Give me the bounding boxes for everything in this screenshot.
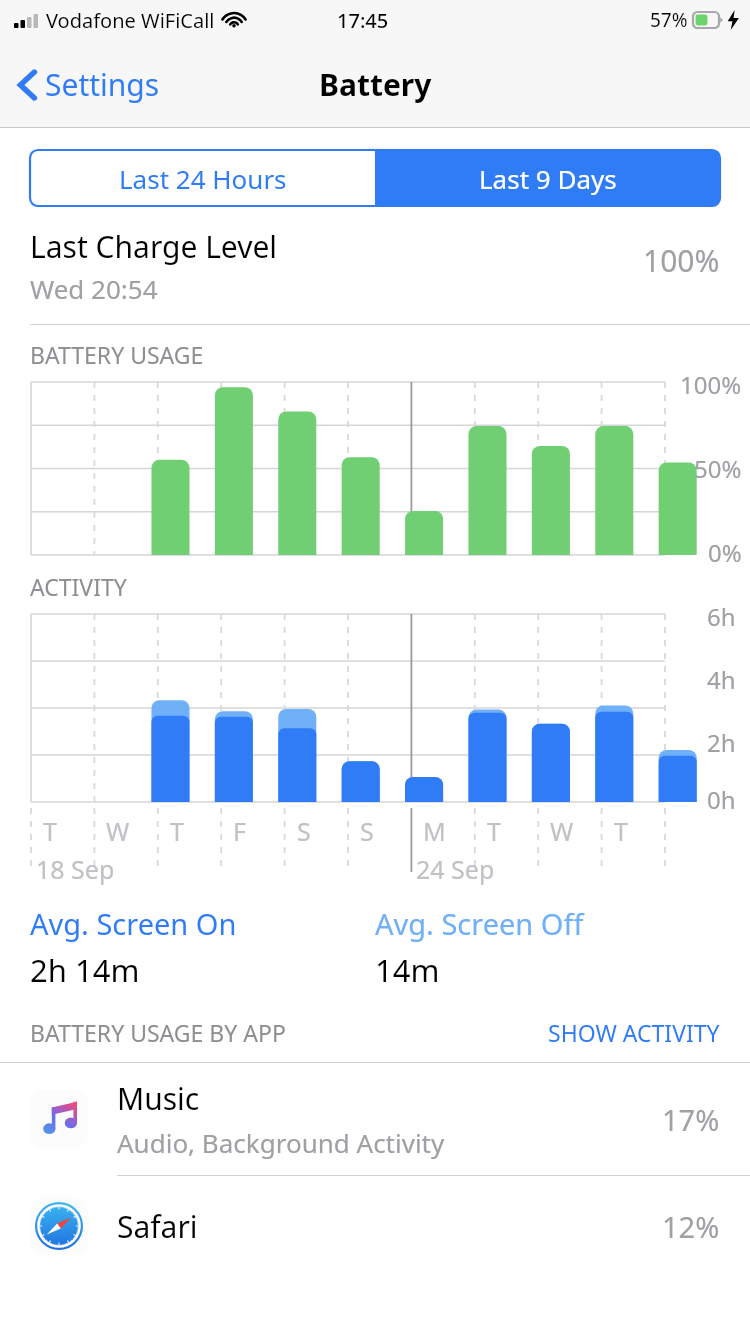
button[interactable]: Last 24 Hours: [30, 150, 375, 206]
staticText: 14m: [375, 949, 440, 991]
button[interactable]: Music: [0, 1063, 750, 1176]
staticText: Avg. Screen Off: [375, 904, 584, 943]
staticText: 2h: [707, 726, 736, 759]
staticText: T: [487, 814, 501, 848]
staticText: ACTIVITY: [30, 571, 127, 602]
staticText: S: [297, 814, 311, 848]
staticText: Safari: [117, 1206, 198, 1247]
staticText: T: [43, 814, 57, 848]
staticText: Wed 20:54: [30, 271, 158, 306]
staticText: 0%: [708, 536, 742, 569]
staticText: F: [233, 814, 246, 848]
button[interactable]: SHOW ACTIVITY: [548, 1017, 720, 1048]
staticText: Last 9 Days: [479, 161, 617, 196]
staticText: Last 24 Hours: [119, 161, 287, 196]
staticText: T: [170, 814, 184, 848]
staticText: Avg. Screen On: [30, 904, 237, 943]
staticText: Last Charge Level: [30, 226, 278, 267]
staticText: Audio, Background Activity: [117, 1125, 445, 1160]
staticText: Battery: [319, 64, 432, 105]
staticText: W: [106, 814, 130, 848]
staticText: 4h: [707, 663, 736, 696]
staticText: BATTERY USAGE BY APP: [30, 1017, 548, 1048]
staticText: 0h: [707, 783, 736, 816]
staticText: BATTERY USAGE: [30, 339, 204, 370]
button[interactable]: Safari: [0, 1176, 750, 1276]
staticText: 18 Sep: [36, 852, 115, 886]
button[interactable]: Last 9 Days: [375, 150, 720, 206]
staticText: 17:45: [337, 7, 389, 34]
staticText: 24 Sep: [416, 852, 495, 886]
staticText: S: [360, 814, 374, 848]
staticText: 6h: [707, 600, 736, 633]
staticText: SHOW ACTIVITY: [548, 1017, 720, 1048]
staticText: Vodafone WiFiCall: [46, 7, 215, 34]
staticText: W: [550, 814, 574, 848]
staticText: Music: [117, 1078, 200, 1119]
staticText: 100%: [643, 240, 720, 281]
staticText: 12%: [662, 1207, 720, 1246]
staticText: T: [614, 814, 628, 848]
button[interactable]: Settings: [14, 58, 164, 111]
staticText: 17%: [662, 1100, 720, 1139]
staticText: 100%: [680, 368, 742, 401]
staticText: 57%: [650, 7, 688, 33]
staticText: Settings: [45, 64, 160, 105]
staticText: 2h 14m: [30, 949, 140, 991]
staticText: M: [423, 814, 446, 848]
staticText: 50%: [694, 452, 742, 485]
